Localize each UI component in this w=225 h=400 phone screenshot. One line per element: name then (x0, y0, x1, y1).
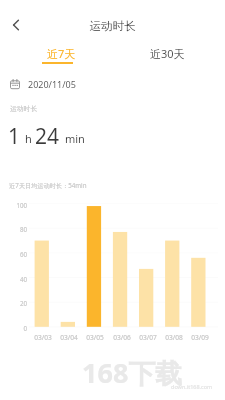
staticText: 近30天 (150, 46, 185, 61)
staticText: 168下载 (82, 354, 183, 391)
staticText: 40 (2, 275, 27, 283)
button[interactable]: Back (1, 10, 31, 40)
staticText: 03/09 (187, 333, 213, 342)
staticText: 80 (2, 225, 27, 233)
staticText: 03/06 (109, 333, 135, 342)
button[interactable]: 近7天 (22, 46, 100, 70)
staticText: 03/08 (161, 333, 187, 342)
staticText: 0 (2, 324, 27, 332)
staticText: 近7天 (47, 46, 76, 61)
staticText: 运动时长 (0, 19, 225, 33)
staticText: down.it168.com (171, 383, 213, 390)
staticText: 20 (2, 299, 27, 307)
staticText: 03/04 (56, 333, 82, 342)
staticText: h (25, 131, 32, 146)
button[interactable]: 2020/11/05 (10, 77, 76, 90)
staticText: 03/05 (82, 333, 108, 342)
button[interactable]: 近30天 (128, 46, 206, 70)
staticText: 2020/11/05 (28, 78, 76, 90)
staticText: min (65, 131, 85, 146)
staticText: 100 (2, 201, 27, 209)
staticText: 24 (35, 122, 60, 151)
staticText: 运动时长 (10, 104, 38, 113)
staticText: 近7天日均运动时长：54min (9, 181, 87, 189)
staticText: 1 (8, 122, 21, 151)
staticText: 60 (2, 250, 27, 258)
staticText: 03/07 (135, 333, 161, 342)
staticText: 03/03 (30, 333, 56, 342)
